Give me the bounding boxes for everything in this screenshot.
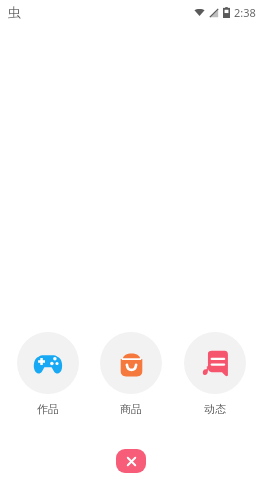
staticText: 商品 [120,402,142,416]
staticText: 2:38 [234,5,256,20]
staticText: 虫 [8,4,21,20]
staticText: 动态 [204,402,226,416]
button[interactable]: Close [116,449,146,473]
staticText: 作品 [37,402,59,416]
button[interactable]: 动态 [179,332,251,416]
button[interactable]: 作品 [12,332,84,416]
button[interactable]: 商品 [95,332,167,416]
